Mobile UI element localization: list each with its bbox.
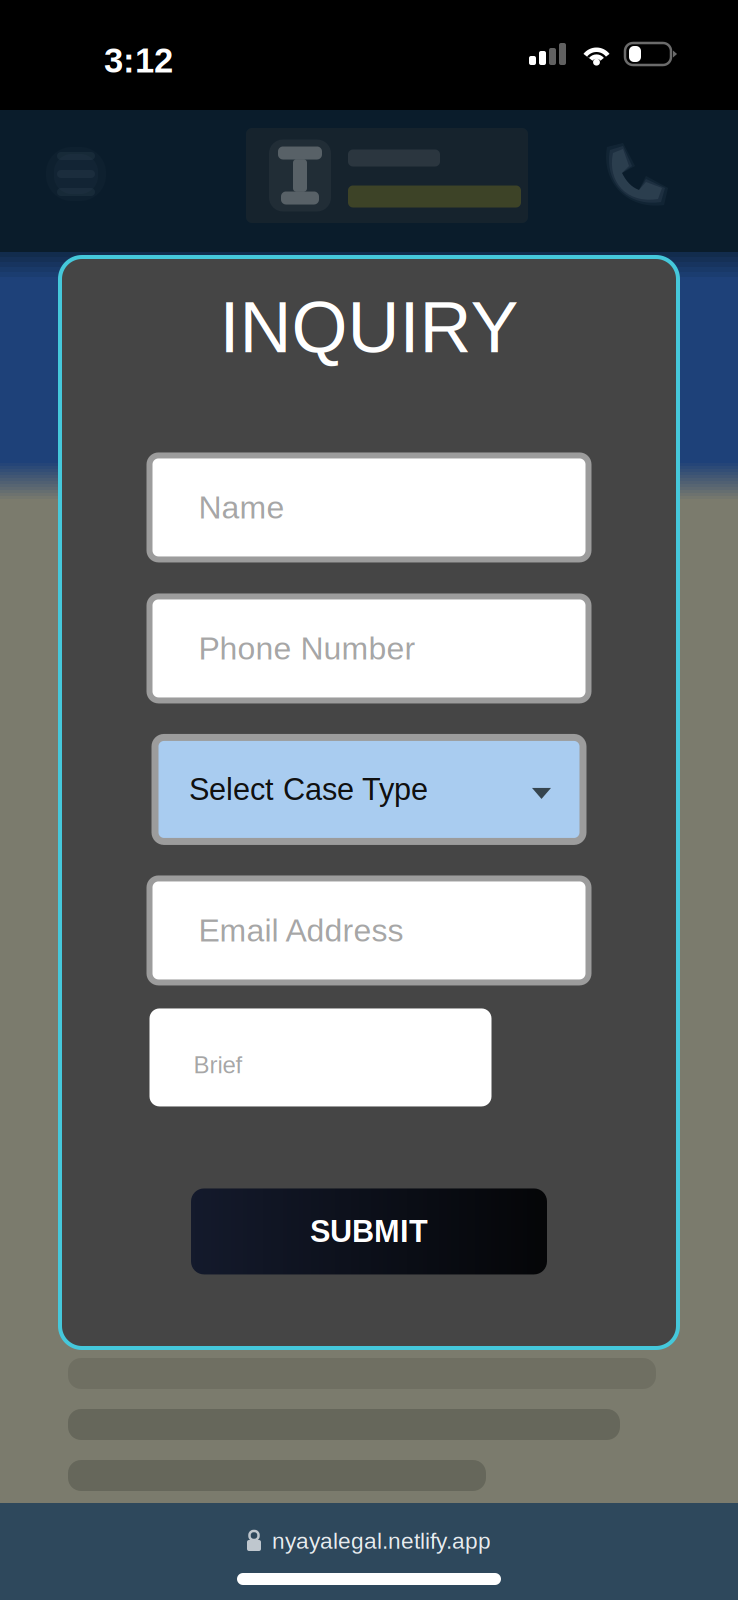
button[interactable]: Select Case Type — [155, 737, 583, 841]
button[interactable]: Phone Number — [149, 596, 588, 700]
staticText: 3:12 — [104, 41, 173, 80]
button[interactable]: Email Address — [149, 878, 588, 982]
staticText: Phone Number — [198, 631, 415, 666]
staticText: SUBMIT — [310, 1214, 428, 1249]
button[interactable]: Menu — [46, 146, 106, 202]
button[interactable]: Call — [601, 144, 667, 212]
button[interactable]: nyayalegal.netlify.app — [237, 1524, 501, 1558]
button[interactable]: Name — [149, 455, 588, 559]
staticText: Select Case Type — [189, 772, 428, 807]
button[interactable]: Brief — [149, 1008, 491, 1106]
staticText: Brief — [193, 1051, 242, 1078]
staticText: Name — [198, 490, 284, 525]
staticText: INQUIRY — [219, 287, 518, 367]
button[interactable]: Nyaya Legal — [246, 128, 528, 223]
staticText: Email Address — [198, 913, 403, 948]
button[interactable]: SUBMIT — [191, 1188, 547, 1274]
staticText: nyayalegal.netlify.app — [272, 1528, 491, 1554]
